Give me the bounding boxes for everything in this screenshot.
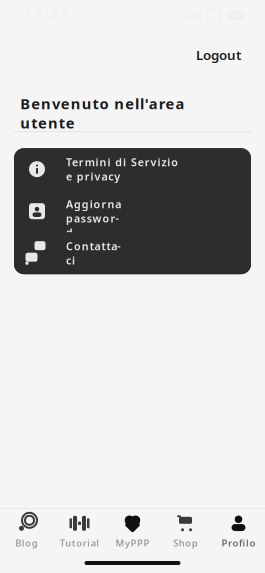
staticText: Termini di Servizio e privacy xyxy=(66,155,189,183)
button[interactable]: Termini di Servizio e privacy xyxy=(14,148,251,190)
staticText: Contattaci xyxy=(66,239,126,267)
staticText: Aggiorna password xyxy=(66,197,122,225)
button[interactable]: Profilo xyxy=(212,510,265,554)
button[interactable]: MyPPP xyxy=(106,510,159,554)
staticText: Profilo xyxy=(221,537,255,549)
staticText: Tutorial xyxy=(60,537,99,549)
staticText: Shop xyxy=(173,537,198,549)
staticText: Benvenuto nell'area utente xyxy=(20,94,245,113)
staticText: Logout xyxy=(196,46,241,64)
button[interactable]: Blog xyxy=(0,510,53,554)
button[interactable]: Contattaci xyxy=(14,232,251,274)
button[interactable]: Tutorial xyxy=(53,510,106,554)
staticText: MyPPP xyxy=(115,537,149,549)
button[interactable]: Logout xyxy=(186,40,251,70)
staticText: Blog xyxy=(15,537,38,549)
button[interactable]: Aggiorna password xyxy=(14,190,251,232)
button[interactable]: Shop xyxy=(159,510,212,554)
